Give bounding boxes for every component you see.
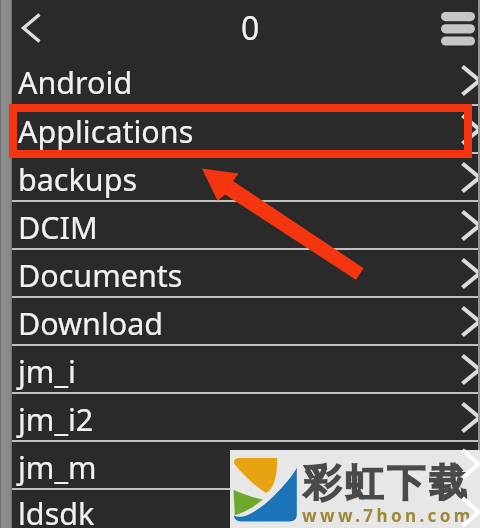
staticText: jm_i (18, 350, 76, 392)
staticText: 彩虹下载 (301, 459, 469, 507)
button[interactable]: DCIM (0, 200, 480, 248)
button[interactable]: jm_i2 (0, 392, 480, 440)
button[interactable]: Download (0, 296, 480, 344)
staticText: DCIM (18, 206, 98, 248)
button[interactable]: Documents (0, 248, 480, 296)
staticText: Documents (18, 254, 183, 296)
button[interactable]: jm_m (0, 440, 480, 488)
staticText: jm_m (18, 446, 97, 488)
button[interactable]: backups (0, 152, 480, 200)
button[interactable]: Android (0, 56, 480, 104)
staticText: jm_i2 (18, 398, 94, 440)
button[interactable]: Menu (436, 6, 480, 50)
staticText: ldsdk (18, 492, 95, 528)
button[interactable]: ldsdk (0, 488, 480, 528)
staticText: Android (18, 61, 133, 103)
staticText: 0 (241, 6, 260, 50)
button[interactable]: jm_i (0, 344, 480, 392)
staticText: backups (18, 158, 138, 200)
staticText: www.7hon.com (302, 504, 474, 527)
staticText: Applications (18, 110, 194, 152)
button[interactable]: Applications (0, 104, 480, 152)
staticText: Download (18, 302, 164, 344)
button[interactable]: Back (11, 8, 51, 48)
